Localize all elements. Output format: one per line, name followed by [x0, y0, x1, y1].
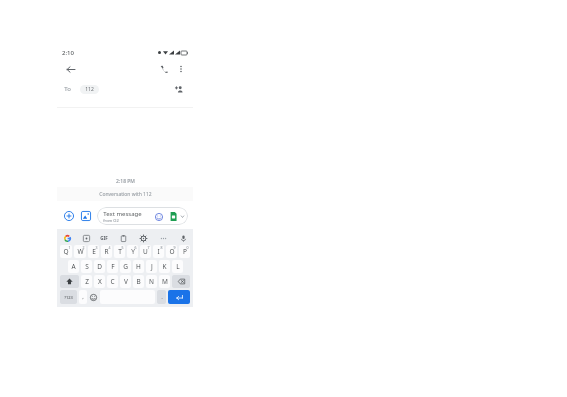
- button[interactable]: Enter: [168, 290, 190, 304]
- button[interactable]: N: [146, 275, 157, 288]
- staticText: 4: [108, 245, 111, 250]
- button[interactable]: B: [133, 275, 144, 288]
- button[interactable]: G: [120, 260, 131, 273]
- staticText: X: [98, 277, 102, 286]
- button[interactable]: F: [107, 260, 118, 273]
- staticText: M: [162, 277, 168, 286]
- button[interactable]: ,: [79, 290, 87, 304]
- staticText: D: [97, 262, 102, 271]
- staticText: 2:10: [62, 49, 74, 57]
- staticText: W: [77, 247, 84, 256]
- button[interactable]: Y: [127, 245, 138, 258]
- button[interactable]: Call: [157, 62, 171, 76]
- button[interactable]: Q: [60, 245, 72, 258]
- button[interactable]: P: [179, 245, 190, 258]
- button[interactable]: A: [68, 260, 79, 273]
- button[interactable]: Stickers: [81, 233, 91, 243]
- staticText: B: [136, 277, 141, 286]
- staticText: 5: [121, 245, 124, 250]
- button[interactable]: H: [133, 260, 144, 273]
- button[interactable]: More options: [175, 63, 187, 75]
- staticText: J: [151, 262, 153, 271]
- button[interactable]: I: [153, 245, 164, 258]
- button[interactable]: Settings: [138, 233, 148, 243]
- staticText: 1: [68, 245, 71, 250]
- staticText: V: [124, 277, 128, 286]
- button[interactable]: 112: [85, 85, 94, 94]
- staticText: E: [92, 247, 96, 256]
- staticText: C: [110, 277, 115, 286]
- staticText: Z: [85, 277, 89, 286]
- staticText: G: [123, 262, 128, 271]
- button[interactable]: Add attachment: [62, 209, 76, 223]
- button[interactable]: Voice input: [178, 233, 188, 243]
- staticText: Text message: [103, 210, 142, 218]
- button[interactable]: E: [88, 245, 99, 258]
- button[interactable]: Z: [81, 275, 92, 288]
- staticText: R: [104, 247, 109, 256]
- staticText: from O2: [103, 218, 119, 223]
- button[interactable]: Send SMS: [167, 210, 179, 222]
- button[interactable]: Shift: [60, 275, 79, 288]
- button[interactable]: T: [114, 245, 125, 258]
- staticText: Q: [63, 247, 69, 256]
- button[interactable]: O: [166, 245, 177, 258]
- button[interactable]: ?123: [60, 290, 77, 304]
- staticText: 7: [147, 245, 150, 250]
- button[interactable]: X: [94, 275, 105, 288]
- button[interactable]: Text message: [97, 207, 188, 225]
- button[interactable]: D: [94, 260, 105, 273]
- staticText: 2:18 PM: [116, 178, 135, 185]
- button[interactable]: W: [74, 245, 86, 258]
- staticText: .: [161, 293, 163, 301]
- staticText: ?123: [64, 295, 73, 300]
- staticText: 6: [134, 245, 137, 250]
- button[interactable]: C: [107, 275, 118, 288]
- button[interactable]: V: [120, 275, 131, 288]
- button[interactable]: R: [101, 245, 112, 258]
- staticText: 0: [186, 245, 189, 250]
- button[interactable]: .: [157, 290, 166, 304]
- staticText: A: [71, 262, 76, 271]
- staticText: H: [136, 262, 141, 271]
- staticText: Conversation with 112: [99, 191, 152, 198]
- staticText: 9: [173, 245, 176, 250]
- button[interactable]: J: [146, 260, 157, 273]
- staticText: P: [183, 247, 187, 256]
- staticText: ,: [82, 293, 84, 301]
- staticText: K: [162, 262, 167, 271]
- staticText: L: [176, 262, 180, 271]
- staticText: S: [85, 262, 89, 271]
- button[interactable]: Google: [62, 233, 72, 243]
- button[interactable]: K: [159, 260, 170, 273]
- staticText: 8: [160, 245, 163, 250]
- staticText: I: [157, 247, 160, 256]
- staticText: Y: [131, 247, 135, 256]
- button[interactable]: Emoji keyboard: [89, 290, 98, 304]
- button[interactable]: Emoji: [153, 211, 164, 222]
- staticText: GIF: [100, 235, 108, 241]
- staticText: To: [64, 85, 71, 93]
- staticText: U: [143, 247, 148, 256]
- staticText: T: [118, 247, 122, 256]
- button[interactable]: Add contact: [173, 83, 186, 96]
- button[interactable]: Clipboard: [118, 233, 128, 243]
- staticText: 3: [95, 245, 98, 250]
- button[interactable]: S: [81, 260, 92, 273]
- button[interactable]: L: [172, 260, 183, 273]
- button[interactable]: Back: [63, 62, 77, 76]
- button[interactable]: U: [140, 245, 151, 258]
- staticText: N: [149, 277, 154, 286]
- button[interactable]: M: [159, 275, 170, 288]
- button[interactable]: Gallery: [79, 209, 93, 223]
- button[interactable]: GIF: [100, 235, 108, 241]
- staticText: F: [111, 262, 115, 271]
- button[interactable]: Backspace: [172, 275, 190, 288]
- staticText: 112: [85, 86, 94, 93]
- staticText: O: [169, 247, 175, 256]
- button[interactable]: More: [158, 233, 168, 243]
- staticText: 2: [82, 245, 85, 250]
